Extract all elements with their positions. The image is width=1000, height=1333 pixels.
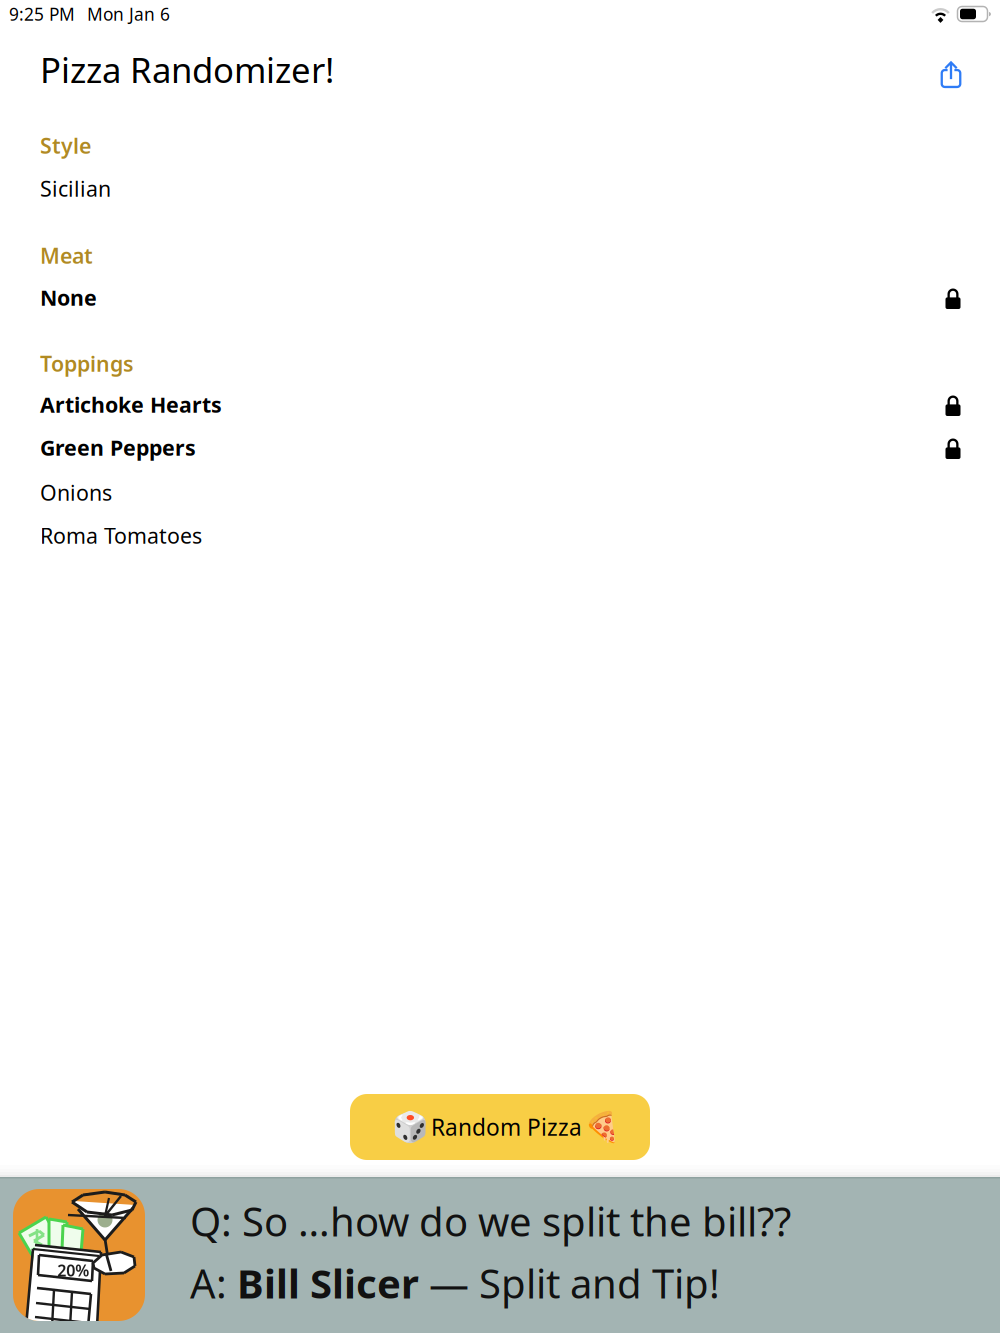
staticText: 9:25 PM [9,2,75,25]
staticText: Meat [40,241,93,270]
staticText: None [40,283,97,312]
staticText: Green Peppers [40,433,196,462]
staticText: Artichoke Hearts [40,390,222,419]
staticText: Bill Slicer [237,1256,419,1309]
staticText: Q: So …how do we split the bill?? [190,1194,791,1247]
button[interactable]: Artichoke Hearts [40,385,962,428]
staticText: Sicilian [40,174,111,203]
staticText: Onions [40,478,112,507]
staticText: 20% [57,1260,89,1281]
button[interactable]: Onions [40,471,962,514]
staticText: A: [190,1256,237,1309]
staticText: Roma Tomatoes [40,521,202,550]
button[interactable]: Sicilian [40,167,962,210]
staticText: Random Pizza [431,1112,582,1142]
button[interactable]: None [40,277,962,320]
button[interactable]: Roma Tomatoes [40,514,962,557]
staticText: Toppings [40,349,134,378]
staticText: 🎲 [392,1110,429,1144]
button[interactable]: Green Peppers [40,428,962,471]
button[interactable]: 🎲 [350,1094,650,1160]
staticText: Pizza Randomizer! [40,46,334,92]
button[interactable]: Share [926,41,966,97]
staticText: Mon Jan 6 [87,2,170,25]
staticText: Style [40,131,91,160]
button[interactable]: Bill Slicer — Split and Tip! advertiseme… [0,1177,1000,1333]
staticText: — Split and Tip! [419,1256,720,1309]
staticText: 🍕 [584,1110,621,1144]
